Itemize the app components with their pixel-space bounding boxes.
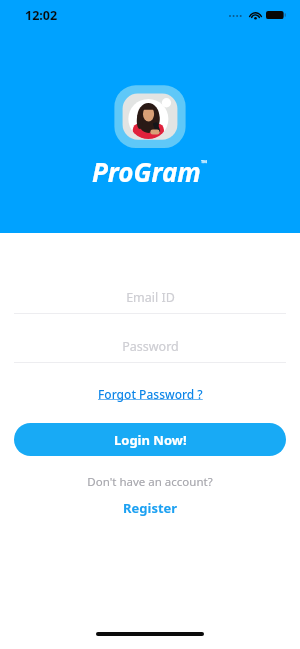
button[interactable]: Forgot Password ?: [88, 382, 213, 406]
button[interactable]: Login Now!: [14, 423, 286, 456]
staticText: ™: [201, 157, 208, 168]
button[interactable]: Password: [14, 330, 286, 363]
button[interactable]: Register: [111, 497, 190, 519]
staticText: Register: [123, 499, 178, 517]
staticText: Don't have an account?: [87, 474, 213, 490]
other: ProGram logo: [110, 84, 190, 150]
staticText: Password: [122, 338, 179, 355]
button[interactable]: Email ID: [14, 281, 286, 314]
staticText: Email ID: [126, 289, 175, 306]
staticText: Forgot Password ?: [98, 386, 203, 402]
staticText: 12:02: [25, 7, 58, 24]
staticText: Login Now!: [114, 431, 187, 449]
staticText: ProGram: [92, 154, 201, 189]
